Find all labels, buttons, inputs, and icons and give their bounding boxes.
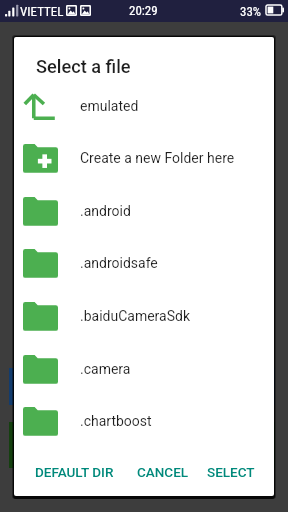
staticText: VIETTEL [20, 4, 64, 19]
staticText: .baiduCameraSdk [80, 308, 191, 324]
staticText: emulated [80, 98, 139, 114]
staticText: 33% [240, 4, 262, 19]
button[interactable]: .camera [14, 343, 274, 395]
button[interactable]: .chartboost [14, 395, 274, 447]
staticText: CANCEL [137, 464, 189, 480]
button[interactable]: Create a new folder [14, 132, 274, 184]
button[interactable]: .android [14, 185, 274, 237]
button[interactable]: Go up [14, 80, 274, 132]
button[interactable]: .androidsafe [14, 237, 274, 289]
staticText: .camera [80, 361, 131, 377]
button[interactable]: .baiduCameraSdk [14, 290, 274, 342]
staticText: 20:29 [129, 3, 158, 18]
other: Create a new folder [23, 144, 58, 173]
staticText: Create a new Folder here [80, 150, 235, 166]
staticText: SELECT [207, 464, 255, 480]
button[interactable]: SELECT [199, 454, 263, 490]
button[interactable]: DEFAULT DIR [27, 454, 122, 490]
other: Go up [23, 93, 55, 120]
staticText: Select a file [36, 56, 131, 77]
staticText: DEFAULT DIR [35, 464, 114, 480]
staticText: .android [80, 203, 131, 219]
button[interactable]: CANCEL [129, 454, 197, 490]
staticText: .chartboost [80, 413, 152, 429]
staticText: .androidsafe [80, 255, 158, 271]
